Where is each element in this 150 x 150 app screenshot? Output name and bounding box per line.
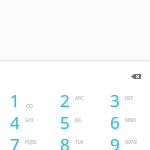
staticText: 4 [10,111,20,133]
staticText: 2 [60,89,70,111]
staticText: TUV [75,139,84,145]
staticText: JKL [75,117,82,123]
staticText: 1 [10,89,20,111]
staticText: 5 [60,111,70,133]
staticText: 7 [10,133,20,150]
button[interactable]: 2 [50,89,100,111]
button[interactable]: 9 [100,133,150,150]
staticText: GHI [25,117,34,123]
staticText: ABC [75,95,84,101]
staticText: 9 [110,133,120,150]
button[interactable]: 1 [0,89,50,111]
staticText: MNO [125,117,137,123]
button[interactable]: 4 [0,111,50,133]
button[interactable]: 5 [50,111,100,133]
button[interactable]: 3 [100,89,150,111]
staticText: WXYZ [125,139,138,145]
staticText: 8 [60,133,70,150]
button[interactable]: Backspace [126,67,146,85]
button[interactable]: 8 [50,133,100,150]
staticText: PQRS [25,139,37,145]
button[interactable]: 6 [100,111,150,133]
staticText: 6 [110,111,120,133]
staticText: DEF [125,95,134,101]
staticText: 3 [110,89,120,111]
button[interactable]: 7 [0,133,50,150]
